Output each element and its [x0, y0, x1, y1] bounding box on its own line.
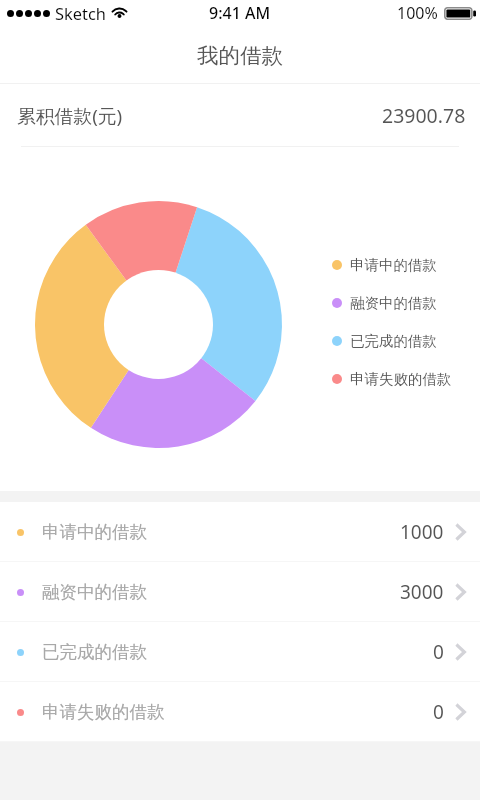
staticText: 融资中的借款 [42, 581, 147, 603]
staticText: 100% [397, 2, 438, 24]
staticText: 已完成的借款 [42, 641, 147, 663]
staticText: 申请中的借款 [42, 521, 147, 543]
staticText: 申请失败的借款 [350, 370, 452, 388]
staticText: 申请中的借款 [350, 256, 437, 274]
staticText: Sketch [55, 2, 106, 24]
staticText: 1000 [400, 519, 444, 545]
staticText: 累积借款(元) [17, 103, 123, 129]
staticText: 已完成的借款 [350, 332, 437, 350]
staticText: 0 [433, 639, 444, 665]
staticText: 0 [433, 699, 444, 725]
staticText: 9:41 AM [209, 2, 271, 24]
button[interactable]: 申请中的借款 [0, 502, 480, 562]
staticText: 融资中的借款 [350, 294, 437, 312]
staticText: 23900.78 [382, 102, 466, 129]
button[interactable]: 已完成的借款 [0, 622, 480, 682]
staticText: 申请失败的借款 [42, 701, 165, 723]
staticText: 我的借款 [197, 42, 283, 69]
staticText: 3000 [400, 579, 444, 605]
button[interactable]: 申请失败的借款 [0, 682, 480, 742]
button[interactable]: 融资中的借款 [0, 562, 480, 622]
